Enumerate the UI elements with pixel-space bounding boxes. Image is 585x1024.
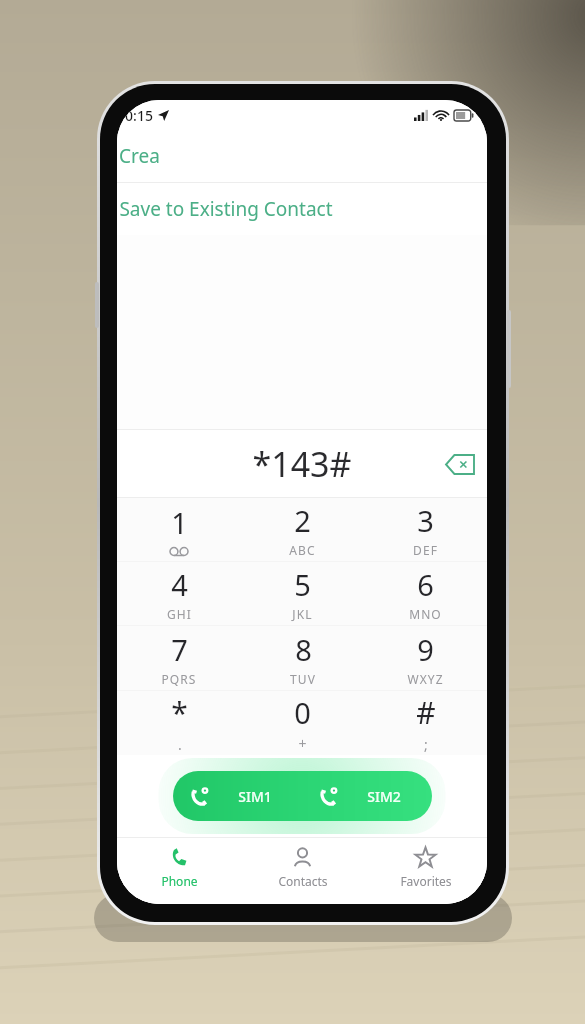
button[interactable]: 9 xyxy=(364,626,487,690)
button[interactable]: Save to Existing Contact xyxy=(117,183,487,235)
button[interactable]: 1 xyxy=(117,498,241,561)
staticText: 0:15 xyxy=(125,106,153,125)
staticText: + xyxy=(298,734,307,753)
staticText: 8 xyxy=(295,630,312,669)
button[interactable]: Favorites xyxy=(364,838,487,904)
staticText: *143# xyxy=(252,441,352,487)
staticText: 7 xyxy=(171,630,188,669)
staticText: JKL xyxy=(292,606,313,622)
staticText: SIM1 xyxy=(238,787,272,806)
staticText: . xyxy=(178,735,182,754)
button[interactable]: Contacts xyxy=(241,838,364,904)
staticText: ABC xyxy=(289,542,316,558)
staticText: 6 xyxy=(417,565,434,604)
staticText: 3 xyxy=(417,501,434,540)
staticText: Crea xyxy=(119,143,160,169)
staticText: MNO xyxy=(409,606,442,622)
button[interactable]: 8 xyxy=(241,626,364,690)
button[interactable]: 7 xyxy=(117,626,241,690)
button[interactable]: 3 xyxy=(364,498,487,561)
staticText: Contacts xyxy=(278,873,328,889)
button[interactable]: Backspace xyxy=(437,442,483,486)
staticText: WXYZ xyxy=(407,671,444,687)
staticText: 9 xyxy=(417,630,434,669)
button[interactable]: 5 xyxy=(241,562,364,625)
button[interactable]: Phone xyxy=(117,838,241,904)
button[interactable]: 0 xyxy=(241,691,364,755)
staticText: * xyxy=(171,692,188,733)
staticText: Phone xyxy=(161,873,198,889)
staticText: PQRS xyxy=(161,671,197,687)
button[interactable]: # xyxy=(364,691,487,755)
staticText: 1 xyxy=(171,503,188,542)
button[interactable]: 2 xyxy=(241,498,364,561)
staticText: GHI xyxy=(167,606,192,622)
button[interactable]: * xyxy=(117,691,241,755)
staticText: Save to Existing Contact xyxy=(119,196,333,222)
staticText: 2 xyxy=(294,501,311,540)
button[interactable]: 4 xyxy=(117,562,241,625)
staticText: SIM2 xyxy=(367,787,401,806)
staticText: TUV xyxy=(290,671,316,687)
staticText: 5 xyxy=(294,565,311,604)
staticText: 0 xyxy=(294,693,311,732)
staticText: 4 xyxy=(171,565,188,604)
button[interactable]: 6 xyxy=(364,562,487,625)
staticText: # xyxy=(416,692,436,733)
staticText: ; xyxy=(424,735,428,754)
button[interactable]: Crea xyxy=(117,130,487,182)
staticText: DEF xyxy=(413,542,438,558)
staticText: Favorites xyxy=(400,873,452,889)
button[interactable]: SIM1 xyxy=(173,771,302,821)
button[interactable]: SIM2 xyxy=(302,771,432,821)
